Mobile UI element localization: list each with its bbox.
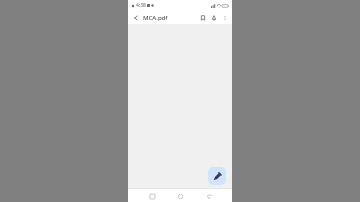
button[interactable]: Recents: [147, 191, 157, 201]
button[interactable]: More options: [220, 13, 229, 22]
button[interactable]: Bookmark: [198, 13, 208, 23]
staticText: MCA.pdf: [143, 14, 168, 22]
button[interactable]: Back: [131, 13, 141, 23]
button[interactable]: Edit: [208, 167, 226, 185]
button[interactable]: Notifications: [209, 13, 219, 23]
button[interactable]: Home: [175, 191, 185, 201]
staticText: 4:38: [136, 2, 146, 9]
button[interactable]: Back: [204, 191, 214, 201]
